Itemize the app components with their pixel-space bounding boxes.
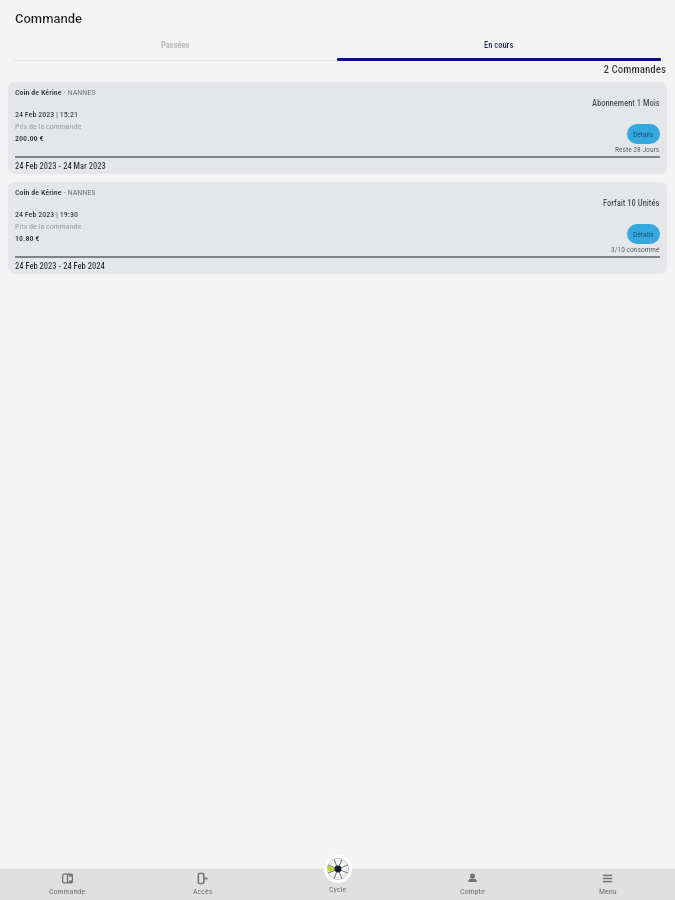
staticText: Passées <box>161 40 190 50</box>
staticText: Coin de Kérine <box>15 88 62 97</box>
button[interactable]: En cours <box>337 37 661 61</box>
button[interactable]: Passées <box>14 37 337 61</box>
button[interactable]: Détails <box>627 124 660 144</box>
staticText: Coin de Kérine <box>15 188 62 197</box>
button[interactable]: Coin de Kérine <box>8 182 667 274</box>
staticText: 24 Feb 2023 - 24 Feb 2024 <box>15 261 105 271</box>
staticText: Commande <box>15 11 83 26</box>
staticText: Reste 28 Jours <box>615 145 660 154</box>
staticText: Accès <box>193 887 213 896</box>
staticText: Abonnement 1 Mois <box>592 98 660 108</box>
staticText: Détails <box>633 130 654 139</box>
button[interactable]: Menu <box>540 869 675 900</box>
button[interactable]: Accès <box>135 869 270 900</box>
staticText: Prix de la commande <box>15 122 82 131</box>
button[interactable]: Détails <box>627 224 660 244</box>
staticText: Commande <box>49 887 86 896</box>
button[interactable]: Commande <box>0 869 135 900</box>
staticText: 3/10 consommé <box>611 245 660 254</box>
staticText: Détails <box>633 230 654 239</box>
staticText: En cours <box>484 40 514 50</box>
staticText: 24 Feb 2023 - 24 Mar 2023 <box>15 161 106 171</box>
button[interactable]: Coin de Kérine <box>8 82 667 174</box>
staticText: Forfait 10 Unités <box>603 198 660 208</box>
staticText: 24 Feb 2023 | 19:30 <box>15 210 78 219</box>
staticText: 200.00 € <box>15 134 44 143</box>
staticText: Menu <box>599 887 617 896</box>
staticText: - NANNES <box>62 188 96 197</box>
staticText: 2 Commandes <box>0 63 666 76</box>
staticText: Cycle <box>329 885 347 894</box>
staticText: Prix de la commande <box>15 222 82 231</box>
staticText: 10.80 € <box>15 234 40 243</box>
staticText: 24 Feb 2023 | 15:21 <box>15 110 78 119</box>
button[interactable]: Cycle <box>324 855 352 883</box>
staticText: - NANNES <box>62 88 96 97</box>
staticText: Compte <box>460 887 485 896</box>
button[interactable]: Compte <box>405 869 540 900</box>
